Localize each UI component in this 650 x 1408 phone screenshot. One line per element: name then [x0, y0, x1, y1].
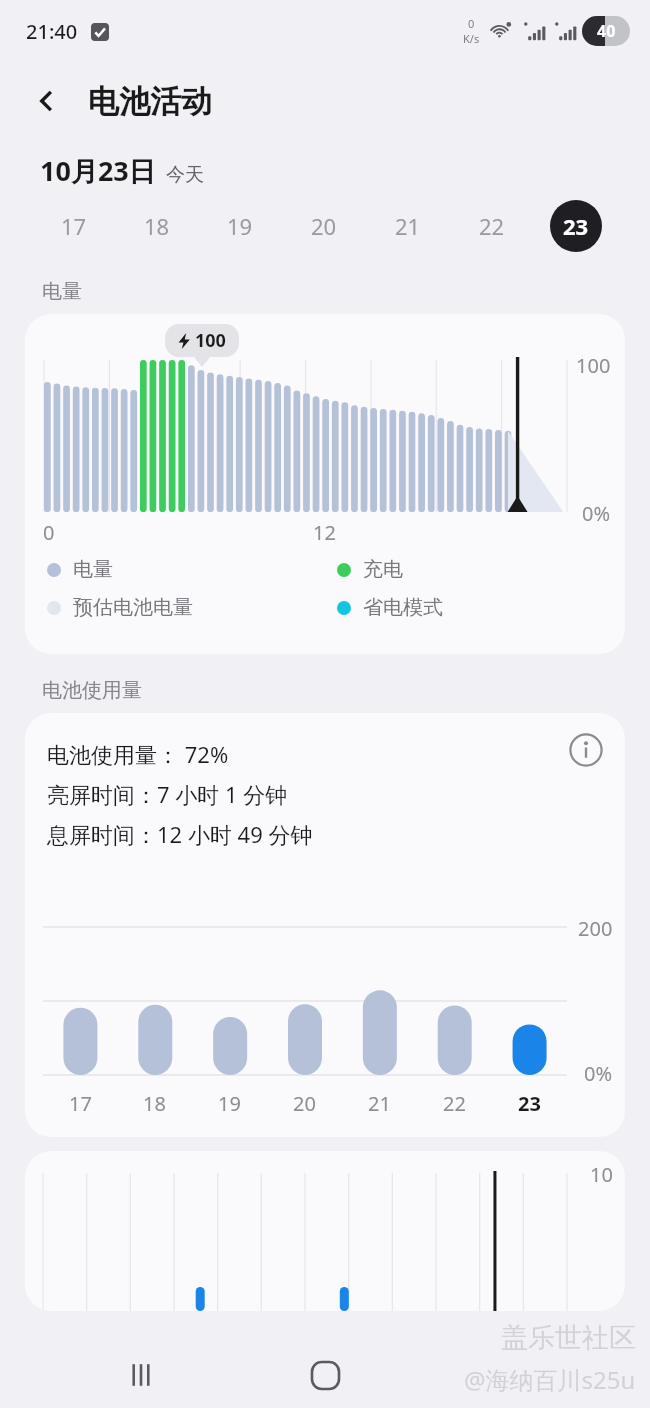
- staticText: 19: [218, 1090, 241, 1117]
- staticText: 22: [479, 211, 505, 241]
- staticText: 21:40: [26, 18, 78, 45]
- staticText: 0: [468, 16, 475, 31]
- staticText: 省电模式: [363, 595, 443, 620]
- button[interactable]: 23: [534, 197, 618, 255]
- staticText: 17: [61, 211, 87, 241]
- button[interactable]: 18: [115, 197, 198, 255]
- staticText: 21: [395, 211, 421, 241]
- staticText: 0: [43, 519, 55, 546]
- staticText: 电量: [42, 279, 82, 304]
- staticText: K/s: [463, 31, 480, 46]
- staticText: 23: [518, 1090, 541, 1117]
- button[interactable]: 17: [32, 197, 115, 255]
- button[interactable]: 信息: [563, 727, 609, 773]
- staticText: 12: [313, 519, 336, 546]
- staticText: 0%: [582, 500, 611, 527]
- staticText: 19: [227, 211, 253, 241]
- staticText: 100: [195, 328, 226, 353]
- staticText: 电池活动: [88, 82, 212, 121]
- staticText: 息屏时间：12 小时 49 分钟: [47, 819, 313, 849]
- staticText: 100: [576, 352, 611, 379]
- button[interactable]: 21: [366, 197, 450, 255]
- staticText: 18: [143, 1090, 166, 1117]
- button[interactable]: 22: [450, 197, 534, 255]
- staticText: 电量: [73, 557, 113, 582]
- button[interactable]: 最近任务: [112, 1346, 170, 1404]
- staticText: 今天: [166, 163, 204, 187]
- button[interactable]: 20: [282, 197, 366, 255]
- staticText: 电池使用量： 72%: [47, 739, 229, 769]
- staticText: 充电: [363, 557, 403, 582]
- staticText: 21: [368, 1090, 391, 1117]
- button[interactable]: 电池使用量： 72%: [25, 713, 625, 1137]
- staticText: 10月23日: [40, 152, 156, 189]
- staticText: 盖乐世社区: [501, 1321, 636, 1355]
- staticText: 23: [563, 211, 589, 241]
- staticText: @海纳百川s25u: [464, 1363, 636, 1396]
- staticText: 18: [144, 211, 170, 241]
- staticText: 电池使用量: [42, 678, 142, 703]
- staticText: 亮屏时间：7 小时 1 分钟: [47, 779, 288, 809]
- staticText: 40: [597, 20, 616, 42]
- staticText: 10: [590, 1161, 613, 1188]
- button[interactable]: 返回: [24, 78, 70, 124]
- staticText: 22: [443, 1090, 466, 1117]
- staticText: 17: [69, 1090, 92, 1117]
- button[interactable]: 100: [25, 314, 625, 654]
- button[interactable]: 主屏幕: [296, 1346, 354, 1404]
- staticText: 预估电池电量: [73, 595, 193, 620]
- staticText: 0%: [584, 1060, 613, 1087]
- staticText: 20: [311, 211, 337, 241]
- button[interactable]: 19: [198, 197, 282, 255]
- staticText: 200: [578, 915, 613, 942]
- staticText: 20: [293, 1090, 316, 1117]
